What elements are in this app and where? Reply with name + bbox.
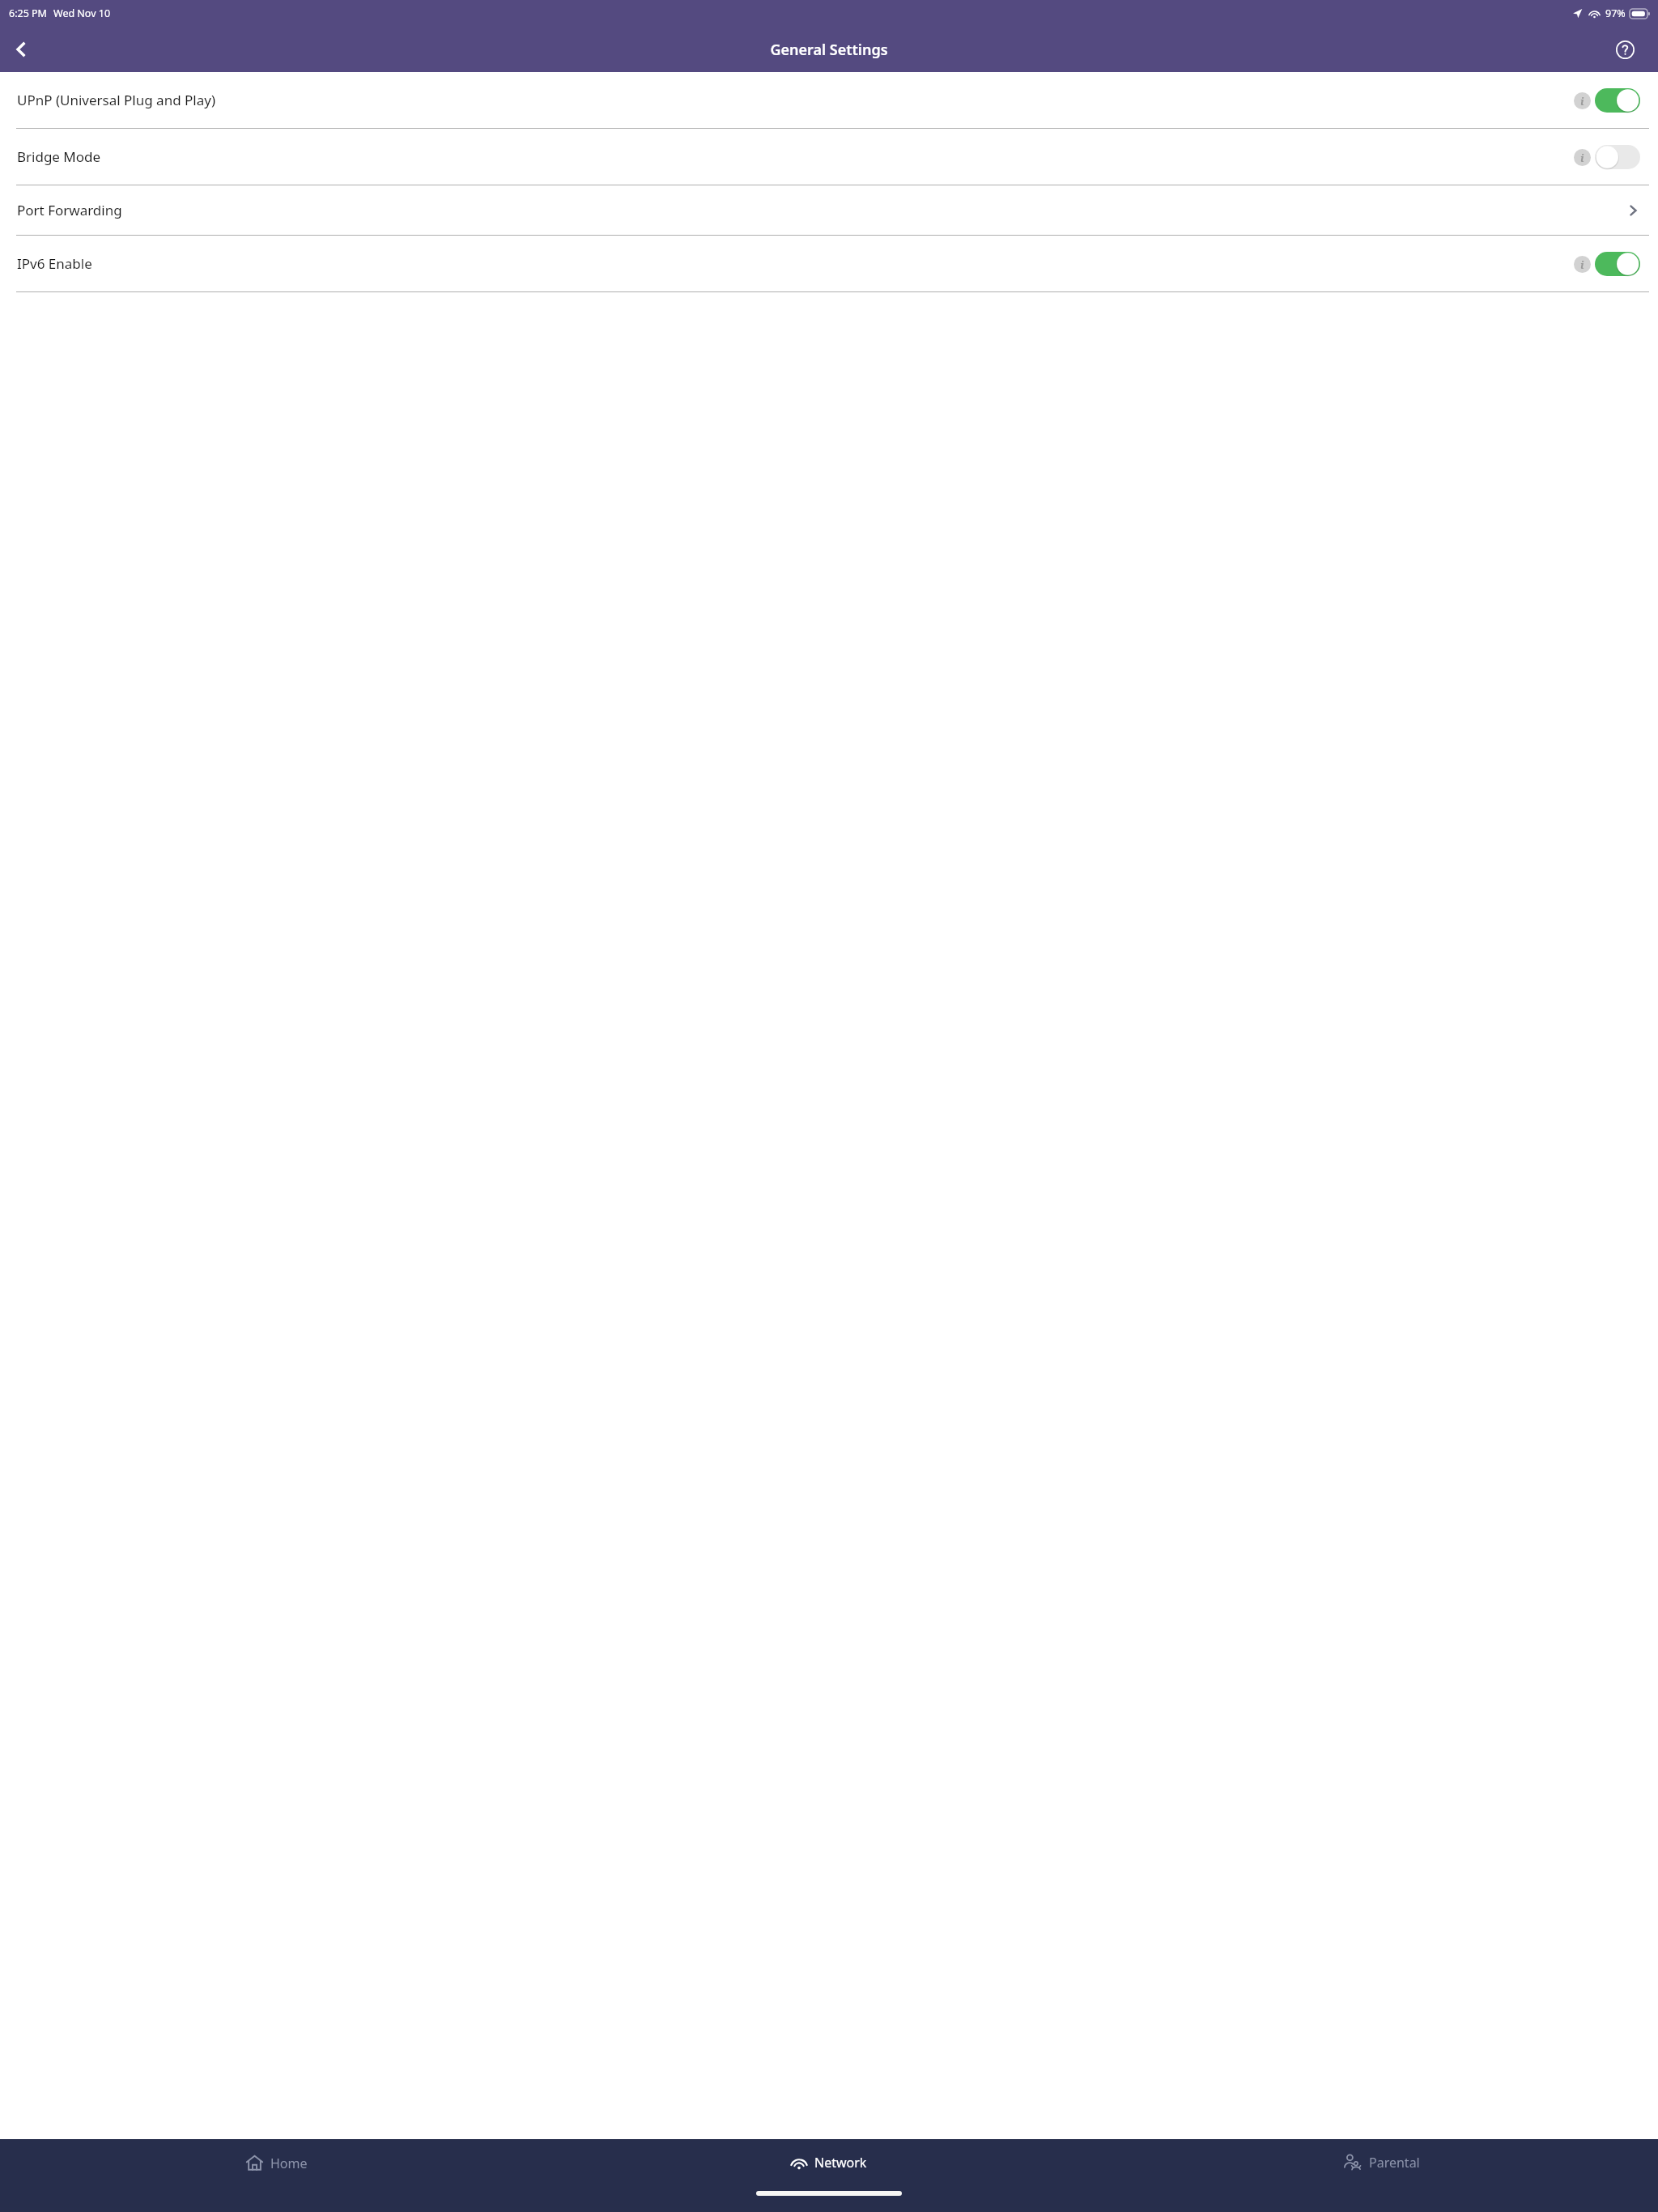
button[interactable]: Toggle on [1595,88,1640,113]
staticText: IPv6 Enable [17,254,92,273]
button[interactable]: Network [552,2139,1105,2186]
staticText: Bridge Mode [17,147,101,166]
button[interactable]: Parental [1105,2139,1658,2186]
staticText: Port Forwarding [17,201,122,219]
staticText: 97% [1605,6,1626,20]
button[interactable]: Info [1574,92,1591,109]
staticText: i [1580,94,1584,108]
button[interactable]: Help [1608,32,1642,66]
staticText: Wed Nov 10 [53,6,111,20]
button[interactable]: Home [0,2139,552,2186]
staticText: i [1580,151,1584,165]
button[interactable]: Bridge Mode [0,129,1658,185]
button[interactable]: Info [1574,256,1591,273]
staticText: UPnP (Universal Plug and Play) [17,91,216,109]
button[interactable]: UPnP (Universal Plug and Play) [0,72,1658,128]
button[interactable]: Back [0,28,42,70]
staticText: 6:25 PM [9,6,47,20]
staticText: Network [814,2154,867,2172]
button[interactable]: IPv6 Enable [0,236,1658,291]
staticText: i [1580,257,1584,272]
button[interactable]: Port Forwarding [0,185,1658,235]
staticText: Parental [1369,2154,1420,2172]
button[interactable]: Toggle off [1595,145,1640,169]
button[interactable]: Info [1574,149,1591,166]
staticText: General Settings [770,40,888,60]
button[interactable]: Toggle on [1595,252,1640,276]
staticText: Home [270,2155,308,2172]
